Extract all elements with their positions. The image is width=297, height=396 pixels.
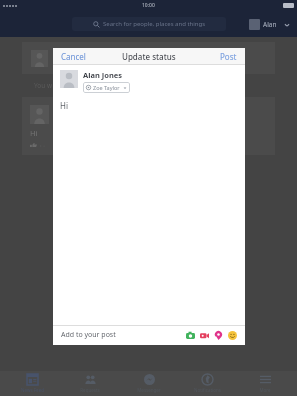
staticText: Messenger: [137, 387, 161, 393]
button[interactable]: Post: [212, 48, 245, 65]
button[interactable]: Notifications: [181, 371, 233, 396]
staticText: More: [259, 387, 271, 393]
staticText: Requests: [80, 387, 100, 393]
staticText: Alan: [263, 20, 277, 29]
button[interactable]: More: [239, 371, 291, 396]
staticText: Alan Jones: [83, 70, 123, 80]
staticText: Add to your post: [61, 330, 116, 340]
staticText: Search for people, places and things: [103, 20, 206, 28]
button[interactable]: Search for people, places and things: [72, 17, 226, 31]
button[interactable]: Cancel: [53, 48, 94, 65]
staticText: Update status: [122, 51, 176, 62]
staticText: You w: [34, 81, 53, 90]
button[interactable]: Messenger: [123, 371, 175, 396]
staticText: Hi: [30, 128, 38, 138]
staticText: 10:00: [142, 2, 155, 9]
button[interactable]: News Feed: [6, 371, 58, 396]
staticText: What's on your mind?: [55, 54, 132, 64]
button[interactable]: Alan: [247, 17, 292, 32]
button[interactable]: Feeling: [228, 331, 237, 340]
button[interactable]: Check in: [214, 331, 223, 340]
button[interactable]: Video: [200, 331, 209, 340]
button[interactable]: Zoe Taylor: [83, 82, 130, 93]
staticText: Zoe Taylor: [93, 84, 120, 91]
button[interactable]: Requests: [64, 371, 116, 396]
staticText: Hi: [60, 100, 68, 111]
staticText: Notifications: [194, 387, 221, 393]
button[interactable]: Photo: [186, 331, 195, 340]
staticText: News Feed: [21, 387, 44, 393]
